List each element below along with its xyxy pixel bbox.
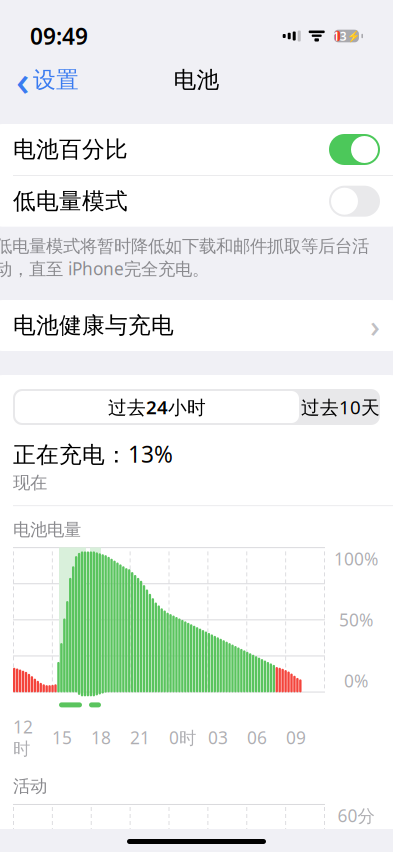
staticText: 06 bbox=[247, 726, 267, 749]
staticText: 13 bbox=[333, 28, 347, 44]
staticText: ‹ bbox=[16, 53, 29, 107]
staticText: 03 bbox=[208, 726, 228, 749]
staticText: 设置 bbox=[33, 66, 79, 94]
staticText: 电池健康与充电 bbox=[13, 312, 174, 339]
staticText: 过去24小时 bbox=[108, 395, 206, 419]
staticText: 09:49 bbox=[30, 21, 88, 51]
button[interactable]: 电池健康与充电 bbox=[0, 300, 393, 351]
button[interactable]: ‹ bbox=[8, 49, 87, 111]
button[interactable]: 过去10天 bbox=[301, 389, 380, 425]
staticText: ⚡ bbox=[347, 30, 360, 42]
staticText: 18 bbox=[91, 726, 111, 749]
staticText: 正在充电：13% bbox=[13, 439, 173, 469]
staticText: 电池电量 bbox=[13, 519, 81, 540]
staticText: 50% bbox=[339, 608, 373, 631]
staticText: 100% bbox=[334, 547, 378, 570]
staticText: 电池 bbox=[173, 66, 219, 94]
staticText: 15 bbox=[52, 726, 72, 749]
staticText: 0时 bbox=[169, 726, 196, 749]
staticText: 60分钟 bbox=[337, 804, 374, 848]
staticText: 现在 bbox=[13, 472, 47, 493]
staticText: 过去10天 bbox=[301, 395, 380, 419]
staticText: 活动 bbox=[13, 776, 47, 797]
staticText: 21 bbox=[130, 726, 150, 749]
staticText: 低电量模式 bbox=[13, 187, 128, 215]
staticText: 0% bbox=[344, 669, 368, 692]
staticText: 09 bbox=[286, 726, 306, 749]
button[interactable]: 电池百分比 bbox=[0, 124, 393, 175]
staticText: 电池百分比 bbox=[13, 136, 128, 163]
staticText: 低电量模式将暂时降低如下载和邮件抓取等后台活动，直至 iPhone完全充电。 bbox=[0, 236, 369, 280]
button[interactable]: 过去24小时 bbox=[13, 389, 301, 425]
staticText: 12时 bbox=[13, 715, 33, 760]
button[interactable]: 低电量模式 bbox=[0, 176, 393, 227]
staticText: › bbox=[370, 305, 380, 346]
